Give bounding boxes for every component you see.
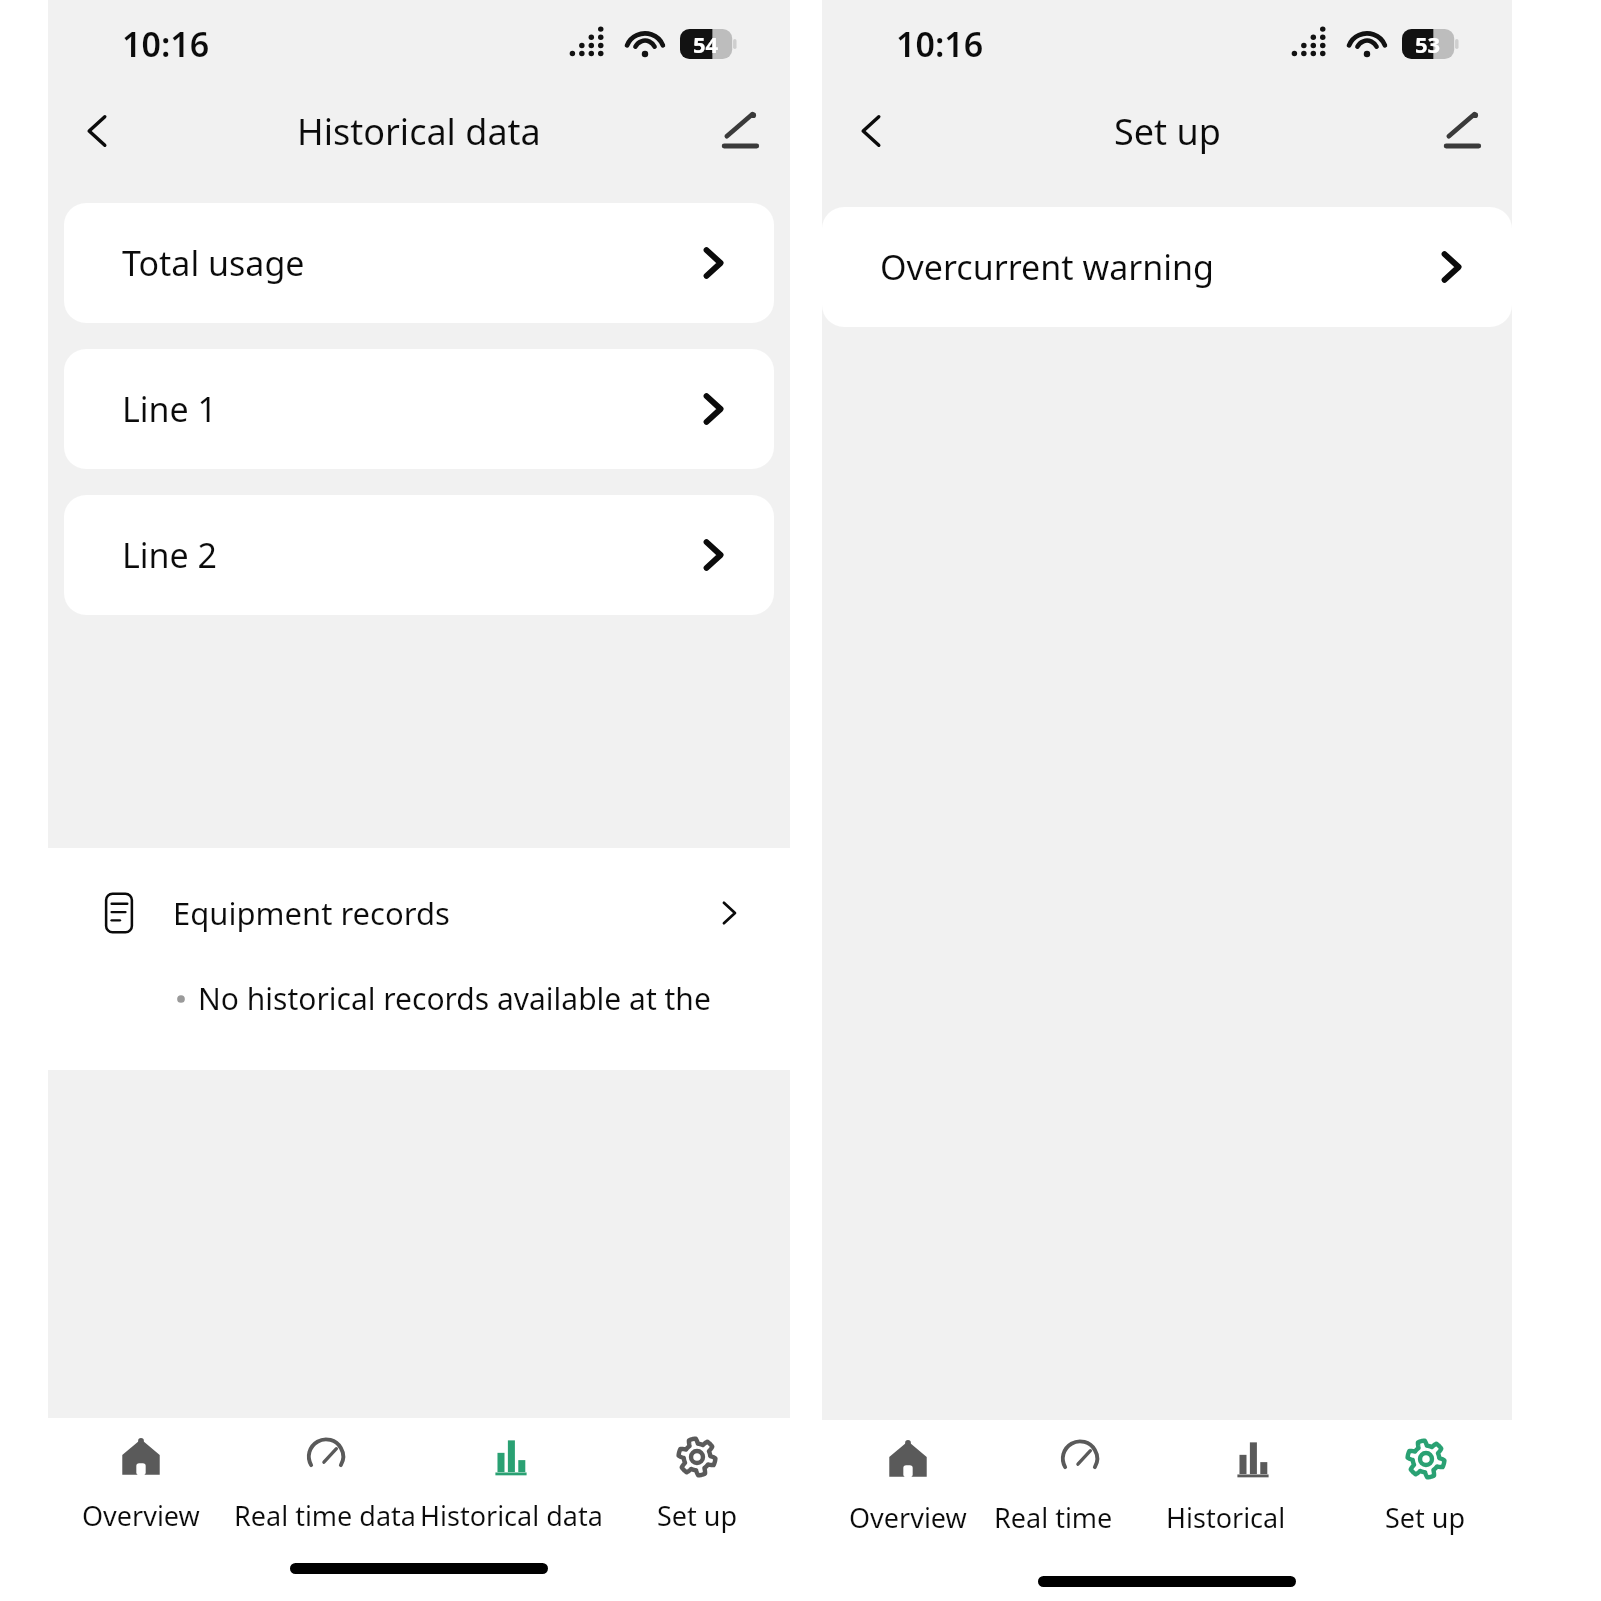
button[interactable]: Overview [822, 1420, 994, 1548]
staticText: Real time data [994, 1499, 1166, 1536]
staticText: Set up [1385, 1499, 1466, 1536]
button[interactable]: Real time data [233, 1418, 418, 1546]
button[interactable]: Edit [1430, 99, 1494, 163]
button[interactable]: Set up [604, 1418, 790, 1546]
button[interactable]: Real time data [994, 1420, 1166, 1548]
staticText: Line 1 [122, 386, 218, 432]
staticText: Historical data [1166, 1499, 1339, 1536]
button[interactable]: Overcurrent warning [822, 207, 1512, 327]
staticText: 10:16 [122, 21, 210, 67]
staticText: Real time data [234, 1497, 417, 1534]
staticText: Total usage [122, 240, 305, 286]
button[interactable]: Historical data [418, 1418, 604, 1546]
staticText: Overcurrent warning [880, 244, 1214, 290]
button[interactable]: Line 1 [64, 349, 774, 469]
button[interactable]: Back [66, 99, 130, 163]
staticText: Overview [849, 1499, 967, 1536]
button[interactable]: Historical data [1166, 1420, 1339, 1548]
staticText: 10:16 [896, 21, 984, 67]
staticText: Overview [82, 1497, 200, 1534]
button[interactable]: Equipment records [48, 848, 790, 978]
staticText: Equipment records [173, 892, 450, 934]
staticText: Historical data [420, 1497, 603, 1534]
button[interactable]: Set up [1339, 1420, 1512, 1548]
staticText: Line 2 [122, 532, 218, 578]
button[interactable]: Total usage [64, 203, 774, 323]
staticText: 54 [693, 29, 719, 59]
button[interactable]: Back [840, 99, 904, 163]
staticText: Historical data [297, 107, 541, 156]
staticText: Set up [1114, 107, 1221, 156]
staticText: No historical records available at the m… [198, 978, 790, 1019]
button[interactable]: Line 2 [64, 495, 774, 615]
button[interactable]: Overview [48, 1418, 233, 1546]
staticText: Set up [657, 1497, 738, 1534]
staticText: 53 [1415, 29, 1441, 59]
button[interactable]: Edit [708, 99, 772, 163]
